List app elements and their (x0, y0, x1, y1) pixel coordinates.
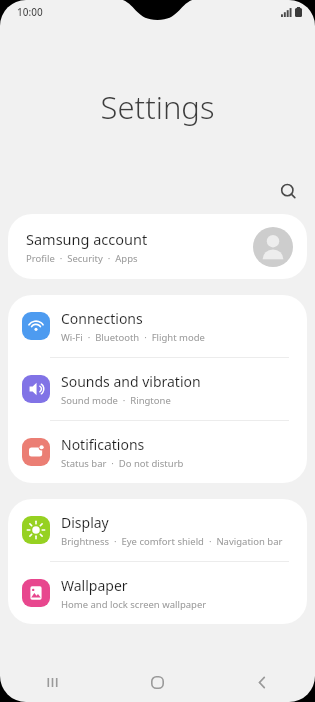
staticText: Sound mode · Ringtone (61, 394, 171, 407)
staticText: Connections (61, 309, 143, 328)
button[interactable]: Notifications (8, 421, 307, 483)
staticText: Display (61, 513, 109, 532)
staticText: 10:00 (17, 5, 43, 19)
staticText: Wallpaper (61, 576, 128, 595)
staticText: Status bar · Do not disturb (61, 457, 184, 470)
button[interactable]: Back (210, 662, 315, 702)
button[interactable]: Wallpaper (8, 562, 307, 624)
staticText: Brightness · Eye comfort shield · Naviga… (61, 535, 283, 548)
button[interactable]: Recents (0, 662, 105, 702)
button[interactable]: Sounds and vibration (8, 358, 307, 420)
staticText: Samsung account (26, 229, 148, 249)
staticText: Home and lock screen wallpaper (61, 598, 207, 611)
button[interactable]: Connections (8, 295, 307, 357)
staticText: Wi-Fi · Bluetooth · Flight mode (61, 331, 205, 344)
staticText: Notifications (61, 435, 145, 454)
staticText: Profile · Security · Apps (26, 252, 138, 265)
staticText: Settings (0, 86, 315, 128)
button[interactable]: Display (8, 499, 307, 561)
button[interactable]: Search (271, 174, 305, 208)
staticText: Sounds and vibration (61, 372, 201, 391)
button[interactable]: Samsung account (8, 214, 307, 279)
button[interactable]: Home (105, 662, 210, 702)
